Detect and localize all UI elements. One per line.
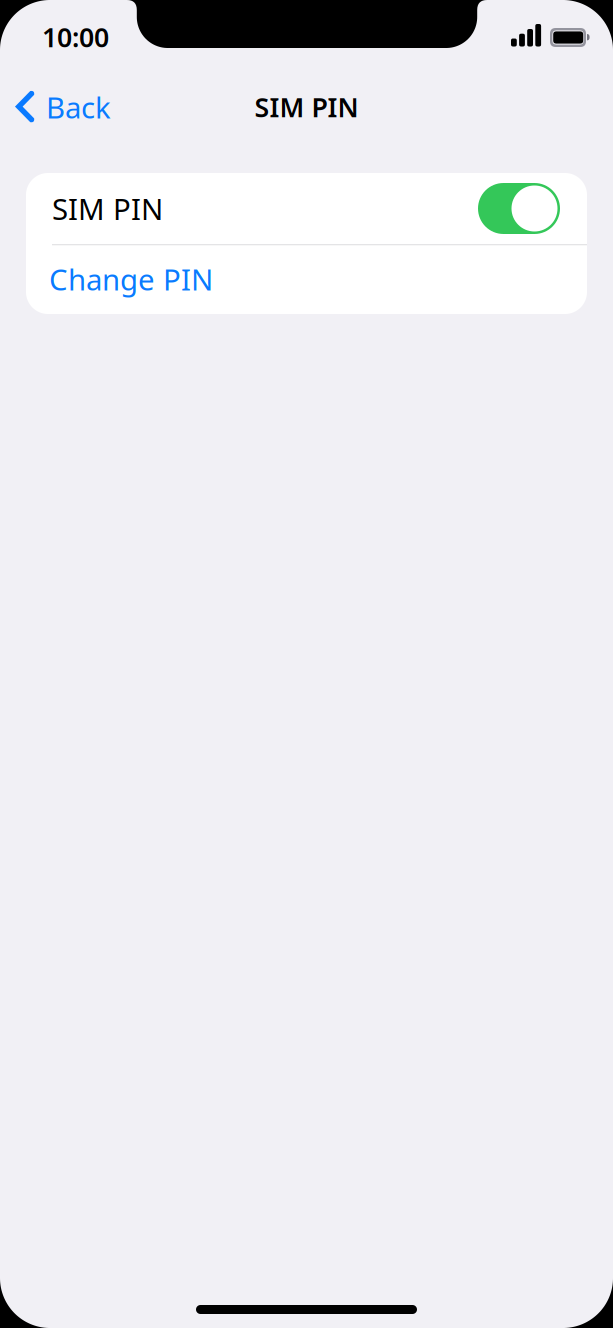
staticText: Change PIN	[49, 259, 213, 298]
staticText: 10:00	[42, 19, 109, 55]
button[interactable]: Back	[16, 76, 142, 138]
staticText: SIM PIN	[52, 189, 163, 228]
staticText: Back	[46, 87, 111, 126]
button[interactable]: SIM PIN	[26, 173, 587, 244]
button[interactable]: Change PIN	[26, 244, 587, 314]
staticText: SIM PIN	[254, 89, 358, 125]
